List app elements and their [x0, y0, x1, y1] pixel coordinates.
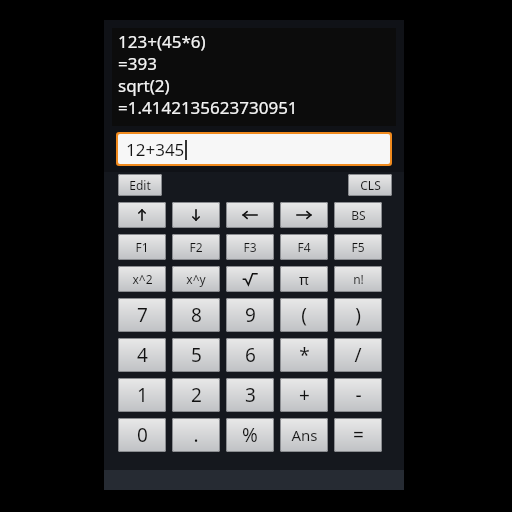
button[interactable]: 4 [118, 338, 166, 372]
button[interactable] [172, 202, 220, 228]
staticText: 4 [137, 342, 148, 368]
button[interactable]: + [280, 378, 328, 412]
button[interactable]: x^2 [118, 266, 166, 292]
staticText: = [353, 422, 364, 448]
button[interactable]: 2 [172, 378, 220, 412]
staticText: 2 [191, 382, 202, 408]
button[interactable]: = [334, 418, 382, 452]
staticText: F4 [297, 239, 311, 255]
button[interactable]: x^y [172, 266, 220, 292]
button[interactable] [226, 202, 274, 228]
staticText: + [299, 382, 310, 408]
button[interactable] [118, 202, 166, 228]
staticText: 9 [245, 302, 256, 328]
staticText: 3 [245, 382, 256, 408]
staticText: BS [351, 207, 366, 223]
button[interactable]: 5 [172, 338, 220, 372]
button[interactable]: F3 [226, 234, 274, 260]
staticText: F5 [351, 239, 365, 255]
staticText: CLS [360, 177, 381, 193]
button[interactable]: F5 [334, 234, 382, 260]
button[interactable]: 3 [226, 378, 274, 412]
button[interactable]: n! [334, 266, 382, 292]
staticText: x^y [186, 271, 206, 287]
staticText: 8 [191, 302, 202, 328]
button[interactable]: 9 [226, 298, 274, 332]
button[interactable]: 0 [118, 418, 166, 452]
staticText: 123+(45*6) [118, 30, 206, 52]
staticText: * [299, 342, 310, 368]
button[interactable] [280, 202, 328, 228]
staticText: ) [355, 302, 361, 328]
staticText: F3 [243, 239, 257, 255]
staticText: 12+345 [126, 138, 185, 161]
button[interactable]: / [334, 338, 382, 372]
staticText: sqrt(2) [118, 74, 170, 96]
button[interactable]: % [226, 418, 274, 452]
staticText: =393 [118, 52, 157, 74]
staticText: =1.4142135623730951 [118, 96, 298, 118]
button[interactable]: π [280, 266, 328, 292]
button[interactable]: CLS [348, 174, 392, 196]
button[interactable]: 8 [172, 298, 220, 332]
button[interactable]: 1 [118, 378, 166, 412]
staticText: 5 [191, 342, 202, 368]
button[interactable]: - [334, 378, 382, 412]
button[interactable]: . [172, 418, 220, 452]
button[interactable]: 12+345 [118, 134, 390, 164]
staticText: Ans [291, 425, 318, 445]
staticText: 1 [137, 382, 148, 408]
button[interactable]: BS [334, 202, 382, 228]
button[interactable]: * [280, 338, 328, 372]
button[interactable]: F4 [280, 234, 328, 260]
button[interactable]: F2 [172, 234, 220, 260]
button[interactable]: 6 [226, 338, 274, 372]
staticText: / [354, 342, 362, 368]
staticText: . [193, 422, 199, 448]
staticText: 0 [137, 422, 148, 448]
button[interactable]: 7 [118, 298, 166, 332]
staticText: - [355, 382, 362, 408]
staticText: 7 [137, 302, 148, 328]
button[interactable]: F1 [118, 234, 166, 260]
button[interactable]: ( [280, 298, 328, 332]
staticText: π [299, 269, 309, 289]
staticText: % [242, 422, 258, 448]
staticText: F1 [135, 239, 149, 255]
staticText: ( [301, 302, 307, 328]
button[interactable] [226, 266, 274, 292]
staticText: Edit [129, 177, 151, 193]
staticText: n! [353, 271, 364, 287]
button[interactable]: Edit [118, 174, 162, 196]
staticText: F2 [189, 239, 203, 255]
staticText: x^2 [132, 271, 153, 287]
button[interactable]: ) [334, 298, 382, 332]
button[interactable]: Ans [280, 418, 328, 452]
staticText: 6 [245, 342, 256, 368]
